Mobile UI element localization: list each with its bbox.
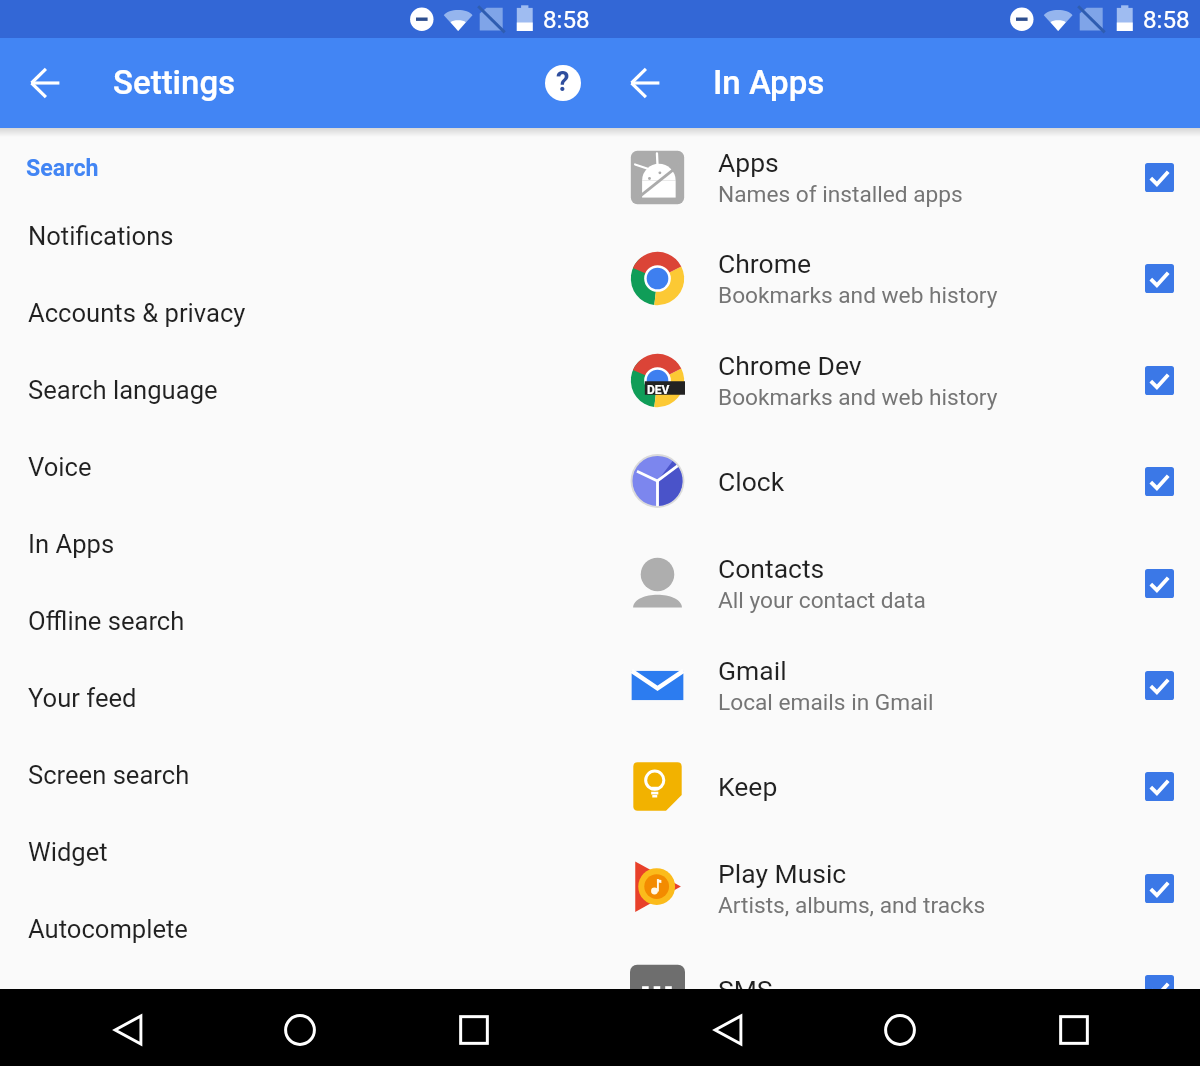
button[interactable]: Apps [600,128,1200,228]
staticText: 8:58 [543,6,590,34]
button[interactable]: Help [539,59,587,107]
staticText: Chrome Dev [718,350,862,381]
button[interactable]: Accounts & privacy [0,274,600,351]
button[interactable]: Voice [0,428,600,505]
button[interactable]: Home [870,1000,930,1060]
button[interactable]: Keep [600,735,1200,837]
button[interactable]: Widget [0,813,600,890]
staticText: SMS [718,974,773,989]
staticText: Chrome [718,248,811,279]
staticText: In Apps [713,63,825,102]
button[interactable]: Clock [600,430,1200,532]
button[interactable]: Gmail [600,634,1200,736]
button[interactable]: Toggle Play Music [1137,866,1181,910]
button[interactable]: Toggle Clock [1137,459,1181,503]
staticText: Artists, albums, and tracks [718,892,986,919]
staticText: Search [26,154,99,181]
staticText: Bookmarks and web history [718,384,998,411]
staticText: Search language [28,375,218,405]
button[interactable]: Home [270,1000,330,1060]
button[interactable]: Back [98,1000,158,1060]
staticText: Offline search [28,606,185,636]
button[interactable]: Search language [0,351,600,428]
button[interactable]: Toggle SMS [1137,967,1181,989]
staticText: Accounts & privacy [28,298,246,328]
button[interactable]: Navigate up [621,59,669,107]
staticText: Voice [28,452,92,482]
staticText: Settings [113,63,236,102]
staticText: Gmail [718,655,787,686]
staticText: Screen search [28,760,190,790]
button[interactable]: Toggle Chrome [1137,256,1181,300]
staticText: 8:58 [1143,6,1190,34]
staticText: Notifications [28,221,174,251]
staticText: Play Music [718,858,847,889]
button[interactable]: Navigate up [21,59,69,107]
button[interactable]: Toggle Chrome Dev [1137,358,1181,402]
staticText: In Apps [28,529,115,559]
staticText: ? [556,66,570,98]
staticText: Your feed [28,683,137,713]
button[interactable]: SMS [600,938,1200,989]
button[interactable]: Toggle Gmail [1137,663,1181,707]
button[interactable]: Autocomplete [0,890,600,967]
button[interactable]: Screen search [0,736,600,813]
button[interactable]: Recent apps [444,1000,504,1060]
button[interactable]: Notifications [0,197,600,274]
button[interactable]: Offline search [0,582,600,659]
staticText: DEV [647,383,670,397]
staticText: Clock [718,466,785,497]
button[interactable]: In Apps [0,505,600,582]
button[interactable]: Toggle Keep [1137,764,1181,808]
button[interactable]: DEV [600,329,1200,431]
staticText: Autocomplete [28,914,188,944]
staticText: Apps [718,147,779,178]
button[interactable]: Contacts [600,532,1200,634]
staticText: Contacts [718,553,825,584]
staticText: Widget [28,837,108,867]
button[interactable]: Play Music [600,837,1200,939]
staticText: Keep [718,771,778,802]
button[interactable]: Your feed [0,659,600,736]
staticText: Bookmarks and web history [718,282,998,309]
button[interactable]: Back [698,1000,758,1060]
button[interactable]: Toggle Contacts [1137,561,1181,605]
staticText: Names of installed apps [718,181,963,208]
button[interactable]: Recent apps [1044,1000,1104,1060]
staticText: Local emails in Gmail [718,689,934,716]
staticText: All your contact data [718,587,926,614]
button[interactable]: Chrome [600,227,1200,329]
button[interactable]: Toggle Apps [1137,155,1181,199]
